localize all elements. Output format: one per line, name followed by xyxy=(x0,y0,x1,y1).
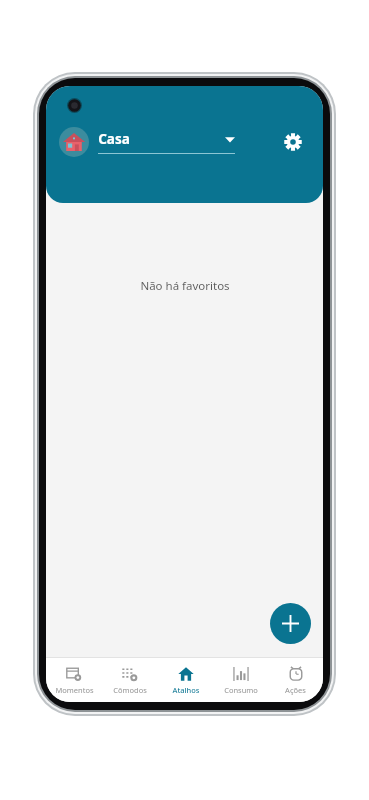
button[interactable]: Add shortcut xyxy=(270,603,311,644)
button[interactable]: Consumo xyxy=(213,658,268,702)
staticText: Consumo xyxy=(224,685,258,695)
button[interactable]: Cômodos xyxy=(102,658,158,702)
staticText: Momentos xyxy=(55,685,94,695)
button[interactable]: Momentos xyxy=(46,658,102,702)
button[interactable]: Settings xyxy=(276,125,310,159)
staticText: Não há favoritos xyxy=(140,278,230,294)
button[interactable]: Home avatar xyxy=(59,127,89,157)
staticText: Cômodos xyxy=(113,685,147,695)
staticText: Ações xyxy=(285,685,306,695)
button[interactable]: Atalhos xyxy=(158,658,213,702)
staticText: Casa xyxy=(98,130,130,148)
button[interactable]: Ações xyxy=(268,658,323,702)
button[interactable]: Casa xyxy=(98,130,235,154)
staticText: Atalhos xyxy=(172,685,200,695)
